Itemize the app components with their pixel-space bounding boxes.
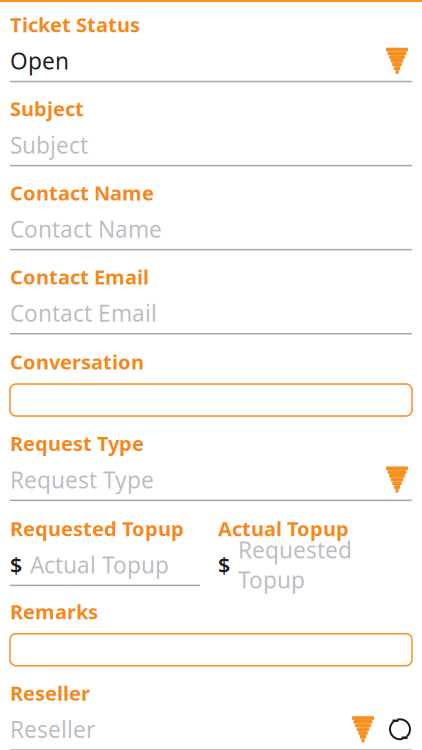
staticText: Contact Email: [10, 263, 149, 290]
button[interactable]: Open Request Type picker: [382, 473, 412, 486]
staticText: Actual Topup: [30, 550, 169, 580]
staticText: Actual Topup: [218, 515, 349, 542]
staticText: $: [218, 550, 230, 579]
staticText: Conversation: [10, 348, 144, 375]
staticText: Contact Name: [10, 214, 162, 244]
button[interactable]: Open Ticket Status picker: [382, 54, 412, 67]
button[interactable]: Conversation: [10, 384, 412, 416]
button[interactable]: Open Reseller picker: [348, 723, 378, 736]
staticText: Requested Topup: [10, 515, 184, 542]
staticText: Remarks: [10, 598, 98, 625]
staticText: Requested Topup: [238, 534, 352, 595]
staticText: Contact Email: [10, 298, 157, 328]
button[interactable]: Remarks: [10, 634, 412, 666]
staticText: Request Type: [10, 464, 154, 495]
staticText: Request Type: [10, 430, 144, 457]
staticText: Subject: [10, 95, 84, 122]
staticText: $: [10, 550, 22, 579]
staticText: Reseller: [10, 680, 90, 706]
staticText: Ticket Status: [10, 11, 140, 38]
staticText: Contact Name: [10, 179, 154, 206]
staticText: ←: [10, 0, 44, 3]
button[interactable]: Refresh Reseller: [378, 717, 412, 741]
staticText: Open: [10, 46, 69, 76]
staticText: Reseller: [10, 714, 95, 744]
staticText: Subject: [10, 130, 88, 160]
